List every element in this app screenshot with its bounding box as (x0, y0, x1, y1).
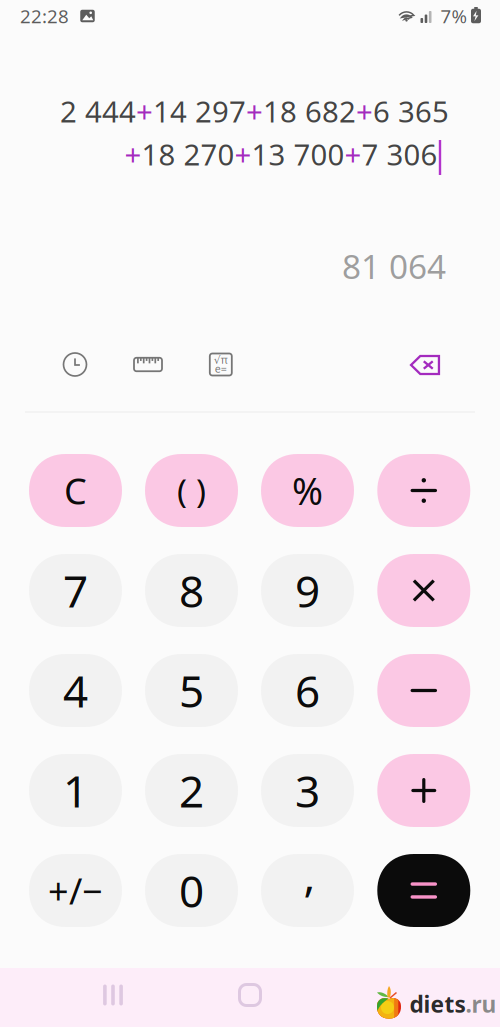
staticText: 0 (179, 861, 204, 920)
staticText: +/− (48, 867, 103, 914)
staticText: 14 297 (153, 91, 246, 130)
staticText: 13 700 (251, 134, 344, 173)
button[interactable]: Home (233, 980, 267, 1010)
staticText: + (234, 134, 251, 173)
staticText: , (303, 845, 315, 904)
staticText: 3 (295, 761, 320, 820)
button[interactable]: ( ) (145, 454, 238, 527)
staticText: % (292, 466, 323, 515)
button[interactable]: Unit converter (131, 347, 165, 381)
button[interactable]: Scientific calculator (204, 347, 238, 381)
button[interactable]: Delete (405, 349, 445, 381)
staticText: 7% (440, 4, 467, 28)
staticText: 7 306 (361, 134, 437, 173)
staticText: e= (215, 361, 227, 376)
button[interactable]: History (58, 347, 92, 381)
staticText: + (356, 91, 373, 130)
staticText: C (64, 467, 87, 514)
button[interactable]: 3 (261, 754, 354, 827)
staticText: + (344, 134, 361, 173)
button[interactable]: 5 (145, 654, 238, 727)
staticText: 1 (63, 761, 88, 820)
staticText: 5 (179, 661, 204, 720)
button[interactable]: 4 (29, 654, 122, 727)
staticText: 4 (63, 661, 88, 720)
button[interactable]: 6 (261, 654, 354, 727)
button[interactable]: Add (377, 754, 470, 827)
staticText: 2 444 (60, 91, 136, 130)
button[interactable]: Subtract (377, 654, 470, 727)
button[interactable]: C (29, 454, 122, 527)
button[interactable]: Divide (377, 454, 470, 527)
button[interactable]: % (261, 454, 354, 527)
button[interactable]: +/− (29, 854, 122, 927)
staticText: 2 (179, 761, 204, 820)
staticText: 22:28 (20, 4, 69, 28)
staticText: + (124, 134, 141, 173)
staticText: √π (214, 352, 228, 367)
staticText: diets (409, 989, 465, 1019)
staticText: .ru (465, 989, 496, 1019)
button[interactable]: 1 (29, 754, 122, 827)
button[interactable]: Multiply (377, 554, 470, 627)
staticText: + (136, 91, 153, 130)
button[interactable]: Recents (96, 980, 130, 1010)
button[interactable]: 8 (145, 554, 238, 627)
button[interactable]: 7 (29, 554, 122, 627)
button[interactable]: 0 (145, 854, 238, 927)
button[interactable]: 2 (145, 754, 238, 827)
button[interactable]: Equals (377, 854, 470, 927)
staticText: 9 (295, 561, 320, 620)
staticText: + (246, 91, 263, 130)
staticText: 81 064 (342, 244, 446, 288)
staticText: 8 (179, 561, 204, 620)
staticText: 6 365 (373, 91, 449, 130)
staticText: 18 270 (141, 134, 234, 173)
staticText: 18 682 (263, 91, 356, 130)
button[interactable]: , (261, 854, 354, 927)
staticText: ( ) (177, 468, 206, 513)
staticText: 6 (295, 661, 320, 720)
button[interactable]: 9 (261, 554, 354, 627)
staticText: 7 (63, 561, 88, 620)
